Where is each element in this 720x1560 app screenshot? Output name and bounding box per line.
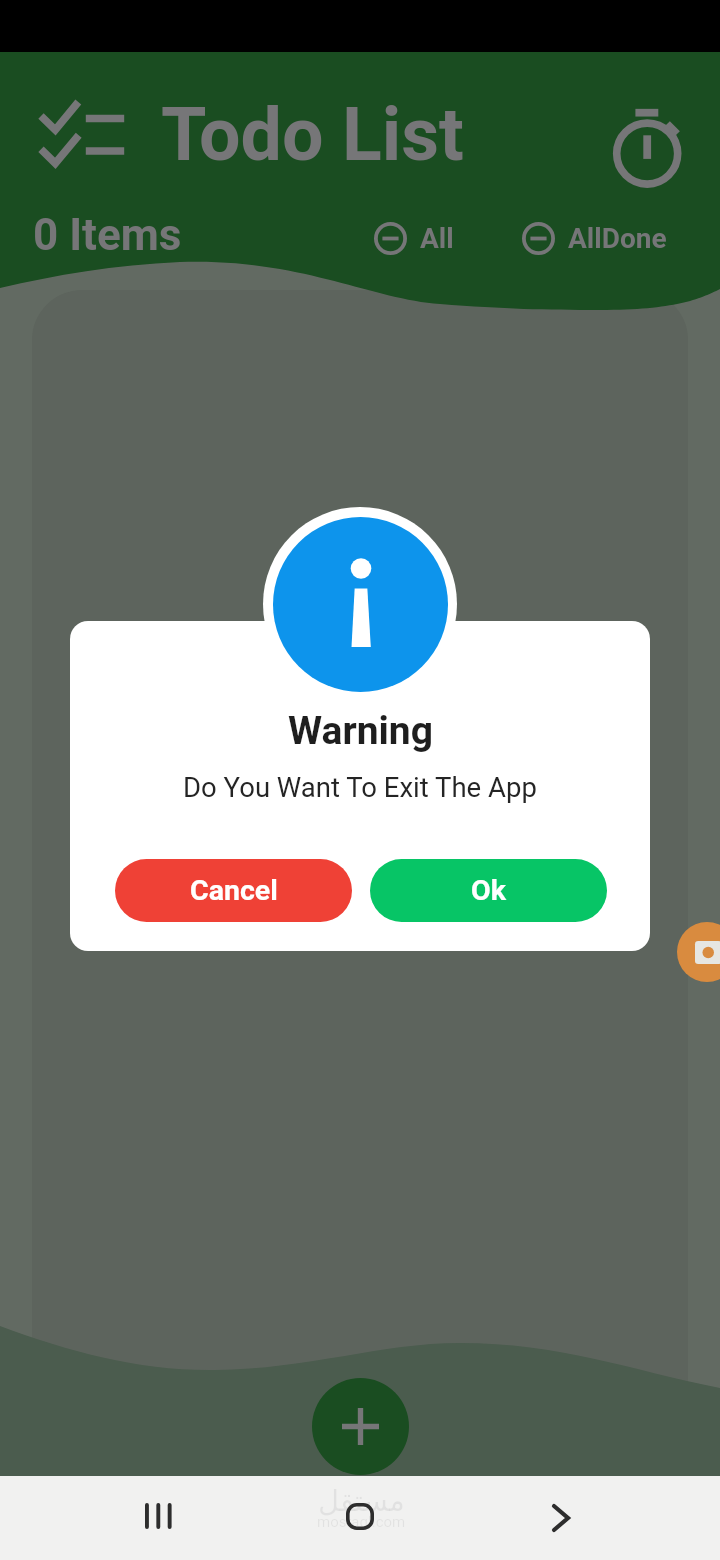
other: Checklist [38,98,128,168]
staticText: Do You Want To Exit The App [183,771,537,803]
button[interactable]: Add task [312,1378,409,1475]
button[interactable]: Home [331,1474,389,1558]
button[interactable]: Timer [603,100,693,196]
staticText: All [420,222,454,255]
staticText: 0 Items [33,209,182,261]
staticText: mostaql.com [317,1513,406,1531]
button[interactable]: Recent apps [128,1474,184,1558]
button[interactable]: All [374,214,454,262]
staticText: Ok [471,874,506,907]
staticText: AllDone [568,222,667,255]
button[interactable]: AllDone [522,214,667,262]
staticText: Cancel [190,874,278,907]
button[interactable]: Ok [370,859,607,922]
staticText: Todo List [161,92,464,178]
button[interactable]: Back [533,1476,589,1560]
staticText: مستقل [318,1484,405,1518]
button[interactable]: Screen recorder [677,922,720,982]
button[interactable]: Cancel [115,859,352,922]
staticText: Warning [288,708,433,754]
